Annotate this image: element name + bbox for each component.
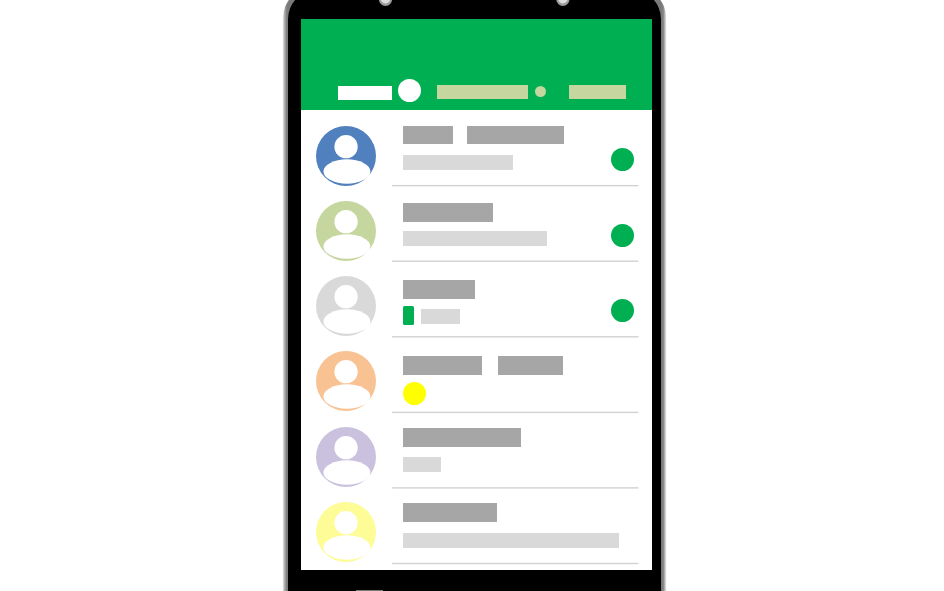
button[interactable]: Conversation with contact 4 [301,337,652,413]
button[interactable]: Conversation with contact 2 [301,186,652,262]
button[interactable]: Unread messages [611,148,634,171]
button[interactable]: Conversation with contact 6 [301,488,652,564]
button[interactable]: Unread messages [611,224,634,247]
button[interactable]: Conversation with contact 5 [301,413,652,489]
button[interactable]: More options [535,86,546,97]
button[interactable]: Conversation with contact 1 [301,110,652,186]
button[interactable]: Camera [398,79,421,102]
button[interactable]: Conversation with contact 3 [301,261,652,337]
button[interactable]: Unread messages [611,299,634,322]
